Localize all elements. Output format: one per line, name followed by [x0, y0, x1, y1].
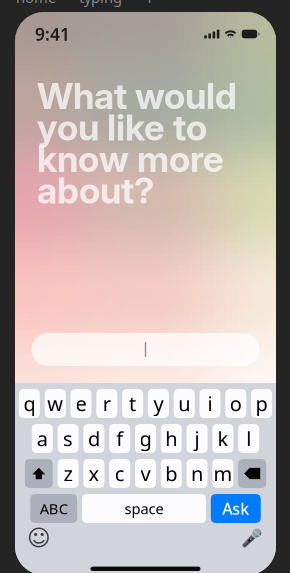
staticText: t — [129, 390, 136, 417]
button[interactable]: Emoji keyboard — [24, 526, 54, 550]
button[interactable]: x — [83, 459, 104, 488]
staticText: p — [256, 390, 268, 417]
button[interactable]: k — [212, 424, 233, 453]
button[interactable]: q — [19, 389, 40, 418]
button[interactable]: Delete — [238, 459, 266, 488]
staticText: 9:41 — [35, 22, 70, 45]
staticText: a — [37, 425, 48, 452]
button[interactable]: e — [70, 389, 91, 418]
button[interactable]: y — [148, 389, 169, 418]
staticText: d — [88, 425, 100, 452]
staticText: c — [115, 460, 125, 487]
button[interactable]: Ask — [211, 494, 261, 523]
button[interactable]: n — [187, 459, 208, 488]
staticText: n — [191, 460, 203, 487]
staticText: j — [195, 425, 200, 452]
staticText: ☺ — [27, 525, 51, 551]
staticText: e — [75, 390, 86, 417]
staticText: space — [124, 499, 163, 518]
button[interactable]: v — [135, 459, 156, 488]
staticText: q — [23, 390, 35, 417]
button[interactable]: p — [251, 389, 272, 418]
staticText: w — [47, 390, 63, 417]
button[interactable]: z — [58, 459, 79, 488]
staticText: f — [116, 425, 123, 452]
staticText: m — [213, 460, 232, 487]
button[interactable]: f — [109, 424, 130, 453]
staticText: u — [178, 390, 190, 417]
button[interactable]: l — [238, 424, 259, 453]
button[interactable]: c — [109, 459, 130, 488]
button[interactable]: i — [199, 389, 220, 418]
button[interactable]: g — [135, 424, 156, 453]
button[interactable]: r — [96, 389, 117, 418]
staticText: v — [140, 460, 150, 487]
staticText: s — [63, 425, 73, 452]
staticText: k — [217, 425, 228, 452]
button[interactable]: ABC — [30, 494, 77, 523]
staticText: r — [103, 390, 111, 417]
staticText: What would you like to know more about? — [37, 74, 237, 212]
staticText: ABC — [40, 499, 68, 518]
staticText: h — [165, 425, 177, 452]
staticText: 🎤 — [241, 528, 263, 548]
button[interactable]: d — [83, 424, 104, 453]
staticText: Ask — [222, 498, 249, 519]
staticText: i — [207, 390, 212, 417]
staticText: l — [246, 425, 251, 452]
button[interactable]: u — [174, 389, 195, 418]
button[interactable]: s — [58, 424, 79, 453]
staticText: o — [230, 390, 242, 417]
button[interactable]: h — [161, 424, 182, 453]
button[interactable]: b — [161, 459, 182, 488]
button[interactable]: j — [187, 424, 208, 453]
button[interactable]: w — [45, 389, 66, 418]
button[interactable]: Shift — [25, 459, 53, 488]
staticText: y — [153, 390, 163, 417]
button[interactable]: a — [32, 424, 53, 453]
staticText: x — [88, 460, 99, 487]
button[interactable]: o — [225, 389, 246, 418]
button[interactable]: space — [82, 494, 206, 523]
button[interactable]: Dictation — [237, 526, 267, 550]
button[interactable]: t — [122, 389, 143, 418]
staticText: b — [165, 460, 177, 487]
button[interactable]: Ask anything — [15, 333, 276, 366]
staticText: z — [64, 460, 73, 487]
staticText: g — [139, 425, 151, 452]
staticText: home — typing — 1 — [16, 0, 153, 7]
button[interactable]: m — [212, 459, 233, 488]
